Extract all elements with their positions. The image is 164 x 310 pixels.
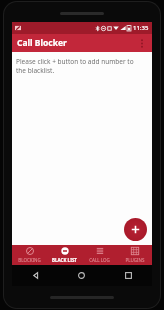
- button[interactable]: BLOCKING: [12, 245, 47, 265]
- staticText: PLUGINS: [125, 257, 145, 263]
- staticText: Call Blocker: [17, 37, 67, 49]
- staticText: BLOCKING: [18, 257, 41, 263]
- button[interactable]: Back: [12, 265, 58, 286]
- staticText: 11:35: [133, 24, 149, 32]
- button[interactable]: Add number: [124, 218, 147, 241]
- staticText: CALL LOG: [89, 257, 110, 263]
- staticText: BLACK LIST: [52, 257, 77, 263]
- button[interactable]: CALL LOG: [82, 245, 117, 265]
- button[interactable]: PLUGINS: [117, 245, 152, 265]
- staticText: Please click + button to add number to t…: [16, 57, 142, 75]
- button[interactable]: More options: [135, 36, 149, 50]
- button[interactable]: BLACK LIST: [47, 245, 82, 265]
- button[interactable]: Recents: [105, 265, 152, 286]
- button[interactable]: Home: [58, 265, 105, 286]
